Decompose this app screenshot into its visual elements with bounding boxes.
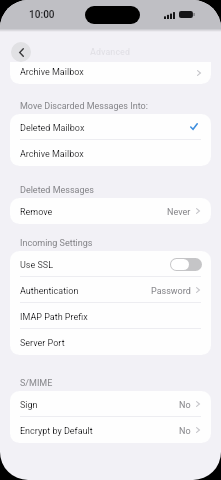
staticText: Authentication	[20, 286, 79, 297]
staticText: Archive Mailbox	[20, 67, 84, 78]
staticText: Use SSL	[20, 260, 54, 271]
staticText: Deleted Mailbox	[20, 123, 85, 134]
button[interactable]: Server Port	[10, 329, 211, 355]
staticText: Advanced	[90, 47, 130, 58]
button[interactable]: Use SSL	[170, 258, 202, 271]
staticText: IMAP Path Prefix	[20, 312, 88, 323]
button[interactable]: Use SSL	[10, 251, 211, 277]
staticText: Move Discarded Messages Into:	[20, 101, 148, 112]
staticText: Sign	[20, 400, 38, 411]
button[interactable]: Sign	[10, 391, 211, 417]
staticText: No	[179, 400, 191, 411]
button[interactable]: Remove	[10, 198, 211, 224]
staticText: Password	[151, 286, 191, 297]
staticText: Archive Mailbox	[20, 149, 84, 160]
button[interactable]: Archive Mailbox	[10, 62, 211, 84]
button[interactable]: Archive Mailbox	[10, 140, 211, 166]
button[interactable]: Authentication	[10, 277, 211, 303]
staticText: Server Port	[20, 338, 65, 349]
staticText: Never	[167, 207, 191, 218]
staticText: S/MIME	[20, 378, 53, 389]
button[interactable]: Deleted Mailbox	[10, 114, 211, 140]
staticText: Incoming Settings	[20, 238, 93, 249]
staticText: No	[179, 426, 191, 437]
staticText: 10:00	[29, 9, 55, 21]
button[interactable]: IMAP Path Prefix	[10, 303, 211, 329]
button[interactable]: Back	[11, 42, 31, 62]
staticText: Remove	[20, 207, 53, 218]
staticText: Deleted Messages	[20, 185, 94, 196]
button[interactable]: Encrypt by Default	[10, 417, 211, 443]
staticText: Encrypt by Default	[20, 426, 93, 437]
